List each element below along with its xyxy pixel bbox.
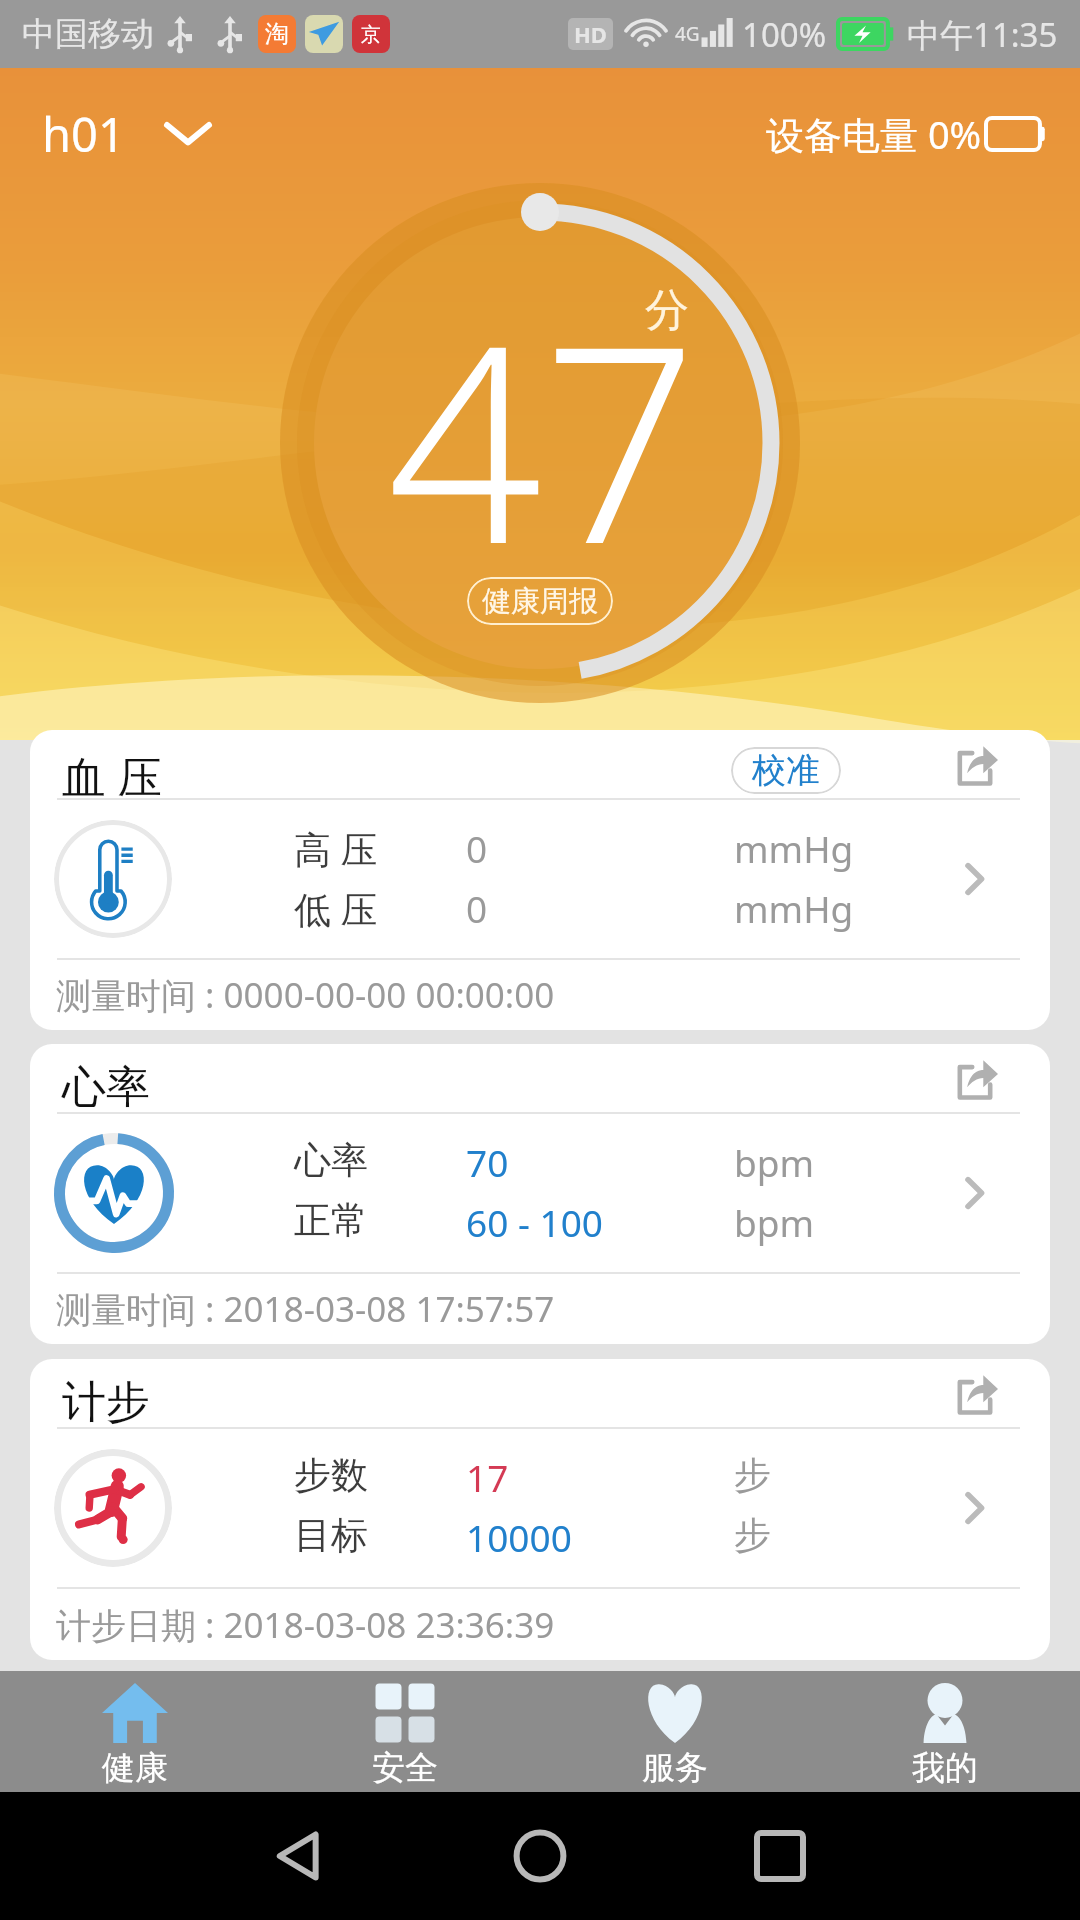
button[interactable]: h01	[42, 102, 209, 166]
staticText: 中国移动	[22, 13, 154, 55]
button[interactable]: Back	[252, 1792, 348, 1920]
staticText: 中午11:35	[907, 12, 1058, 57]
staticText: bpm	[734, 1137, 815, 1187]
staticText: bpm	[734, 1197, 815, 1247]
button[interactable]: 安全	[270, 1671, 540, 1792]
staticText: 100%	[742, 12, 827, 57]
button[interactable]: Share	[950, 741, 1000, 791]
button[interactable]: 健康周报	[467, 577, 613, 625]
button[interactable]: 高 压	[30, 800, 1050, 958]
staticText: 步数	[294, 1452, 368, 1499]
button[interactable]: 服务	[540, 1671, 810, 1792]
staticText: 47	[387, 252, 698, 622]
staticText: 17	[466, 1452, 509, 1502]
staticText: 安全	[372, 1747, 438, 1789]
staticText: 健康	[102, 1747, 168, 1789]
staticText: 淘	[265, 19, 289, 49]
staticText: 校准	[752, 749, 820, 792]
staticText: 健康周报	[482, 583, 598, 620]
staticText: 设备电量 0%	[766, 108, 982, 160]
staticText: 高 压	[294, 823, 378, 874]
staticText: 心率	[62, 1060, 150, 1115]
staticText: 计步	[62, 1375, 150, 1430]
staticText: 测量时间 : 2018-03-08 17:57:57	[56, 1285, 555, 1333]
staticText: 步	[734, 1512, 771, 1559]
staticText: mmHg	[734, 883, 854, 933]
staticText: 正常	[294, 1197, 368, 1244]
staticText: 60 - 100	[466, 1197, 603, 1247]
button[interactable]: 步数	[30, 1429, 1050, 1587]
button[interactable]: Share	[950, 1370, 1000, 1420]
staticText: 0	[466, 883, 488, 933]
staticText: HD	[574, 19, 607, 49]
staticText: 血 压	[62, 746, 162, 806]
staticText: 70	[466, 1137, 509, 1187]
button[interactable]: Share	[950, 1055, 1000, 1105]
staticText: 目标	[294, 1512, 368, 1559]
button[interactable]: 心率	[30, 1114, 1050, 1272]
staticText: 10000	[466, 1512, 572, 1562]
button[interactable]: Recents	[732, 1792, 828, 1920]
staticText: mmHg	[734, 823, 854, 873]
button[interactable]: 健康	[0, 1671, 270, 1792]
staticText: 测量时间 : 0000-00-00 00:00:00	[56, 971, 555, 1019]
staticText: 4G	[675, 21, 700, 47]
button[interactable]: Home	[492, 1792, 588, 1920]
staticText: 服务	[642, 1747, 708, 1789]
staticText: h01	[42, 102, 125, 166]
staticText: 分	[645, 283, 689, 338]
staticText: 低 压	[294, 883, 378, 934]
staticText: 心率	[294, 1137, 368, 1184]
staticText: 我的	[912, 1747, 978, 1789]
button[interactable]: 我的	[810, 1671, 1080, 1792]
staticText: 计步日期 : 2018-03-08 23:36:39	[56, 1601, 555, 1649]
staticText: 京	[361, 22, 381, 47]
button[interactable]: 校准	[731, 747, 841, 794]
staticText: 步	[734, 1452, 771, 1499]
staticText: 0	[466, 823, 488, 873]
